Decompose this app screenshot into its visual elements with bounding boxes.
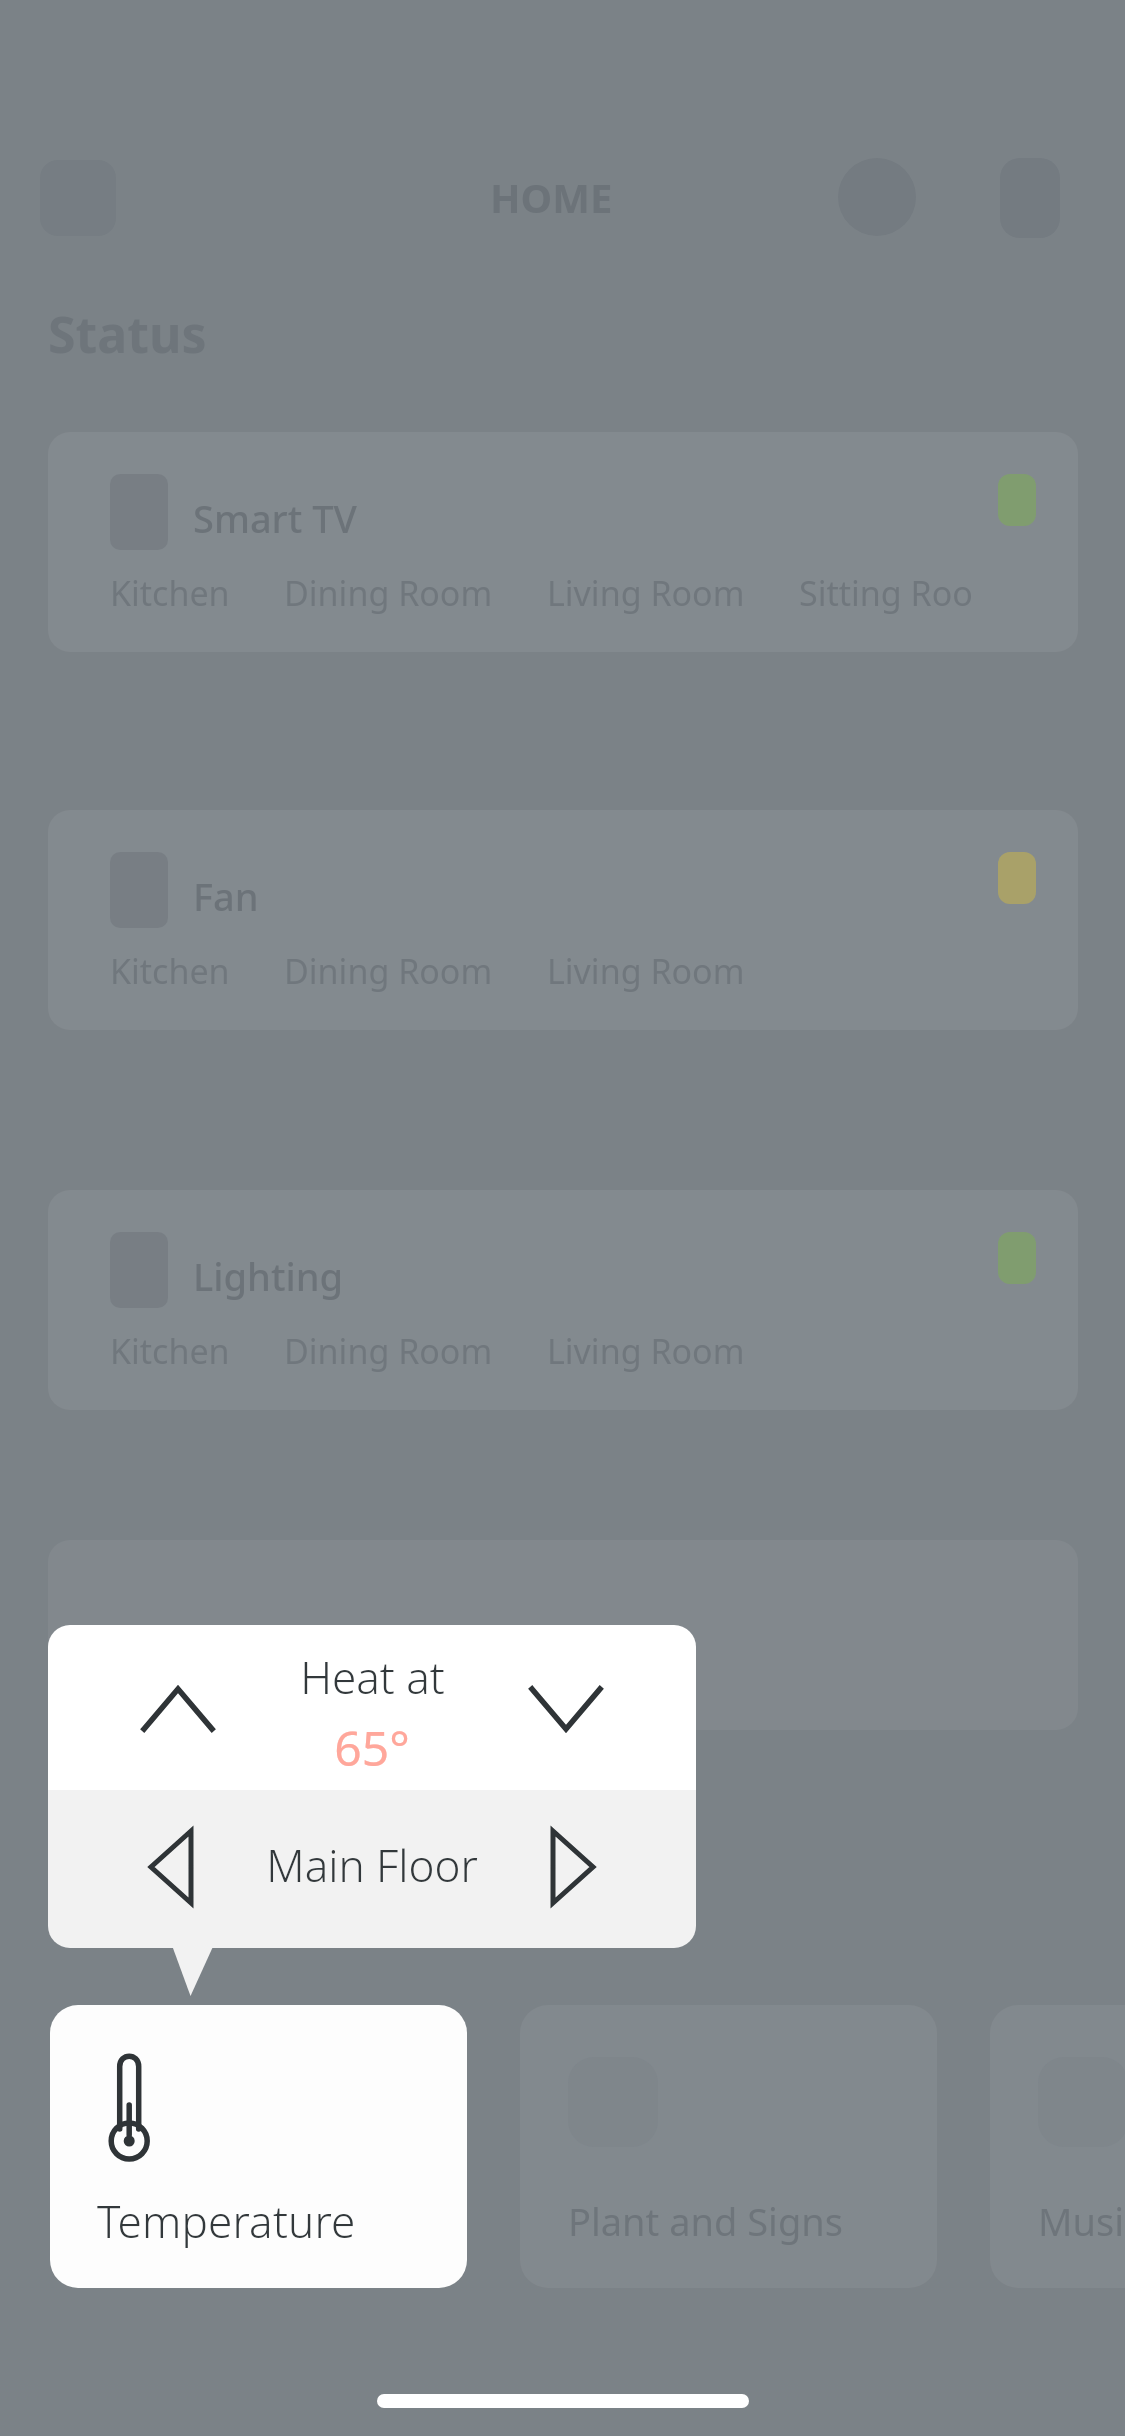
button[interactable]: Next room: [508, 1812, 638, 1922]
staticText: Dining Room: [284, 948, 493, 994]
staticText: Dining Room: [284, 1328, 493, 1374]
button[interactable]: Previous room: [106, 1812, 236, 1922]
button[interactable]: Lighting: [48, 1190, 1078, 1410]
staticText: Main Floor: [266, 1835, 478, 1895]
button[interactable]: Living Room: [547, 570, 745, 616]
staticText: HOME: [490, 170, 613, 224]
button[interactable]: Dining Room: [284, 1328, 493, 1374]
staticText: Kitchen: [110, 948, 230, 994]
staticText: Living Room: [547, 570, 745, 616]
staticText: Status: [48, 300, 207, 368]
staticText: Kitchen: [110, 1328, 230, 1374]
button[interactable]: Kitchen: [110, 948, 230, 994]
staticText: Living Room: [547, 948, 745, 994]
staticText: Living Room: [547, 1328, 745, 1374]
button[interactable]: Kitchen: [110, 1328, 230, 1374]
button[interactable]: Dining Room: [284, 570, 493, 616]
button[interactable]: Temperature: [50, 2005, 467, 2288]
staticText: Fan: [193, 870, 259, 922]
staticText: Plant and Signs: [568, 2195, 843, 2247]
button[interactable]: Decrease temperature: [494, 1663, 638, 1755]
button[interactable]: Increase temperature: [106, 1663, 250, 1755]
staticText: Lighting: [193, 1250, 344, 1302]
staticText: 65°: [334, 1715, 410, 1780]
staticText: Temperature: [97, 2191, 356, 2251]
button[interactable]: Living Room: [547, 1328, 745, 1374]
staticText: Sitting Roo: [799, 570, 973, 616]
button[interactable]: Smart TV: [48, 432, 1078, 652]
staticText: Kitchen: [110, 570, 230, 616]
staticText: Dining Room: [284, 570, 493, 616]
button[interactable]: Living Room: [547, 948, 745, 994]
button[interactable]: Sitting Roo: [799, 570, 973, 616]
staticText: Music: [1038, 2195, 1125, 2247]
staticText: Smart TV: [193, 492, 357, 544]
button[interactable]: Dining Room: [284, 948, 493, 994]
staticText: Heat at: [300, 1647, 445, 1707]
button[interactable]: Kitchen: [110, 570, 230, 616]
button[interactable]: Fan: [48, 810, 1078, 1030]
button[interactable]: [48, 1540, 1078, 1730]
